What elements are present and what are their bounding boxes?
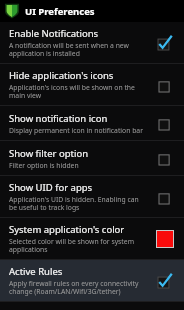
button[interactable]: Active Rules <box>0 260 184 301</box>
staticText: Show UID for apps <box>9 181 93 194</box>
staticText: Show notification icon <box>9 112 108 125</box>
button[interactable]: System application's color <box>0 218 184 259</box>
staticText: Enable Notifications <box>9 27 99 40</box>
staticText: Show filter option <box>9 147 89 160</box>
staticText: A notification will be sent when a new a… <box>9 41 148 58</box>
staticText: Application's UID is hidden. Enabling ca… <box>9 195 148 212</box>
button[interactable]: Show notification icon <box>0 106 184 140</box>
staticText: System application's color <box>9 223 125 236</box>
staticText: Hide application's icons <box>9 69 114 82</box>
button[interactable]: Show UID for apps <box>0 176 184 217</box>
button[interactable]: Show filter option <box>0 141 184 175</box>
staticText: Apply firewall rules on every connectivi… <box>9 279 148 296</box>
staticText: Selected color will be shown for system … <box>9 237 148 254</box>
staticText: Filter option is hidden <box>9 161 79 170</box>
button[interactable]: Hide application's icons <box>0 64 184 105</box>
button[interactable]: Enable Notifications <box>0 22 184 63</box>
staticText: UI Preferences <box>25 5 95 18</box>
staticText: Application's icons will be shown on the… <box>9 83 148 100</box>
staticText: Active Rules <box>9 265 63 278</box>
staticText: Display permanent icon in notification b… <box>9 126 143 135</box>
